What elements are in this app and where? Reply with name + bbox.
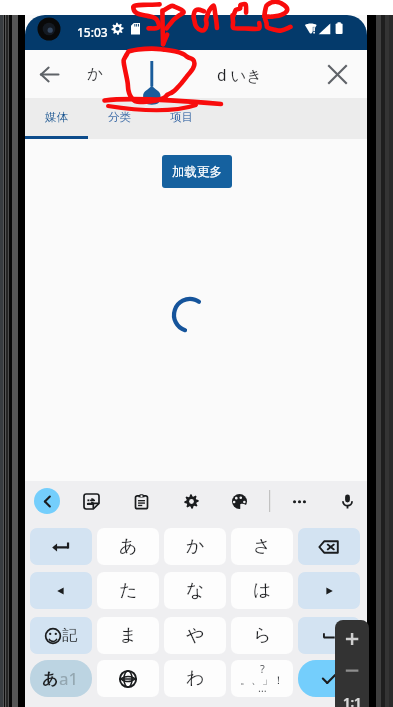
staticText: あ bbox=[42, 669, 59, 689]
staticText: は bbox=[253, 579, 272, 602]
staticText: 1:1 bbox=[343, 693, 362, 707]
button[interactable]: た bbox=[97, 572, 159, 609]
button[interactable]: か bbox=[164, 528, 226, 565]
button[interactable]: Zoom out bbox=[335, 654, 369, 685]
button[interactable]: Voice input bbox=[332, 486, 362, 516]
button[interactable]: あ bbox=[97, 528, 159, 565]
button[interactable]: さ bbox=[231, 528, 293, 565]
button[interactable]: 媒体 bbox=[25, 98, 88, 139]
button[interactable]: Collapse toolbar bbox=[34, 488, 60, 514]
button[interactable]: や bbox=[164, 617, 226, 654]
staticText: ま bbox=[119, 624, 138, 647]
staticText: ? bbox=[260, 661, 265, 676]
button[interactable]: 项目 bbox=[150, 98, 212, 139]
staticText: d いき bbox=[217, 64, 263, 85]
button[interactable]: ら bbox=[231, 617, 293, 654]
button[interactable]: Cursor left bbox=[30, 572, 92, 609]
staticText: 加载更多 bbox=[172, 164, 222, 180]
staticText: さ bbox=[253, 535, 272, 558]
button[interactable]: Switch input mode bbox=[30, 660, 92, 697]
button[interactable]: Tab bbox=[30, 528, 92, 565]
button[interactable]: Actual size bbox=[335, 685, 369, 707]
button[interactable]: 分类 bbox=[88, 98, 150, 139]
button[interactable]: Themes bbox=[224, 486, 254, 516]
staticText: 15:03 bbox=[77, 24, 108, 40]
button[interactable]: Emoji bbox=[30, 617, 92, 654]
staticText: か bbox=[87, 64, 103, 84]
staticText: 分类 bbox=[108, 110, 131, 124]
staticText: や bbox=[186, 624, 205, 647]
staticText: ら bbox=[253, 624, 272, 647]
button[interactable]: Backspace bbox=[298, 528, 360, 565]
button[interactable]: Settings bbox=[176, 486, 206, 516]
button[interactable]: Stickers bbox=[76, 486, 106, 516]
staticText: わ bbox=[186, 667, 205, 690]
button[interactable]: は bbox=[231, 572, 293, 609]
button[interactable]: Cursor right bbox=[298, 572, 360, 609]
button[interactable]: ま bbox=[97, 617, 159, 654]
staticText: 。、」！ bbox=[240, 673, 284, 687]
staticText: 媒体 bbox=[45, 110, 68, 124]
button[interactable]: Clipboard bbox=[126, 486, 156, 516]
button[interactable]: More options bbox=[284, 486, 314, 516]
staticText: な bbox=[186, 579, 205, 602]
button[interactable]: Language bbox=[97, 660, 159, 697]
staticText: a1 bbox=[59, 667, 79, 690]
button[interactable]: Punctuation bbox=[231, 660, 293, 697]
button[interactable]: Space bbox=[298, 617, 360, 654]
staticText: 記 bbox=[62, 626, 77, 645]
staticText: か bbox=[186, 535, 205, 558]
button[interactable]: 加载更多 bbox=[162, 155, 232, 188]
button[interactable]: Zoom in bbox=[335, 620, 369, 654]
staticText: た bbox=[119, 579, 138, 602]
button[interactable]: Back bbox=[31, 56, 68, 93]
button[interactable]: Enter bbox=[298, 660, 360, 697]
staticText: … bbox=[258, 680, 267, 695]
staticText: あ bbox=[119, 535, 138, 558]
button[interactable]: わ bbox=[164, 660, 226, 697]
button[interactable]: Clear query bbox=[319, 56, 356, 93]
staticText: 项目 bbox=[170, 110, 193, 124]
button[interactable]: な bbox=[164, 572, 226, 609]
